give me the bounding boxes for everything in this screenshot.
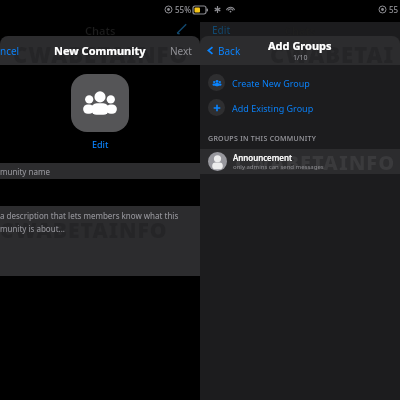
button[interactable]: CWABETAINFO: [200, 149, 400, 174]
staticText: Back: [218, 44, 241, 58]
staticText: a description that lets members know wha…: [0, 210, 179, 221]
button[interactable]: Community photo: [71, 74, 129, 132]
staticText: Add Groups: [268, 38, 332, 53]
staticText: Add Existing Group: [232, 102, 314, 114]
staticText: CWABETAINFO: [235, 149, 396, 174]
staticText: only admins can send messages: [233, 163, 324, 171]
staticText: CWABETAINFO: [13, 39, 188, 65]
staticText: Chats: [285, 23, 316, 38]
staticText: Next: [170, 44, 192, 58]
button[interactable]: Back: [200, 36, 249, 65]
staticText: munity is about...: [0, 223, 65, 234]
button[interactable]: Edit: [84, 136, 117, 152]
staticText: New Community: [54, 43, 146, 58]
staticText: GROUPS IN THIS COMMUNITY: [208, 134, 317, 144]
staticText: CWABETAINFO: [270, 39, 400, 65]
button[interactable]: New Community: [48, 39, 152, 62]
staticText: Edit: [212, 23, 231, 37]
staticText: Announcement: [233, 152, 292, 163]
staticText: 55%: [175, 4, 191, 15]
button[interactable]: CWABETAINFO: [0, 206, 200, 276]
button[interactable]: munity name: [0, 163, 200, 179]
button[interactable]: Add Existing Group: [200, 95, 400, 120]
staticText: 1/10: [293, 53, 308, 63]
staticText: CWABETAINFO: [0, 216, 168, 245]
staticText: ncel: [0, 44, 20, 58]
button[interactable]: Next: [162, 36, 200, 65]
staticText: Edit: [92, 138, 109, 150]
button[interactable]: Create New Group: [200, 70, 400, 95]
staticText: munity name: [0, 166, 50, 177]
button[interactable]: ncel: [0, 36, 26, 65]
staticText: 55: [389, 4, 399, 15]
staticText: Chats: [85, 23, 116, 38]
staticText: Create New Group: [232, 77, 310, 89]
